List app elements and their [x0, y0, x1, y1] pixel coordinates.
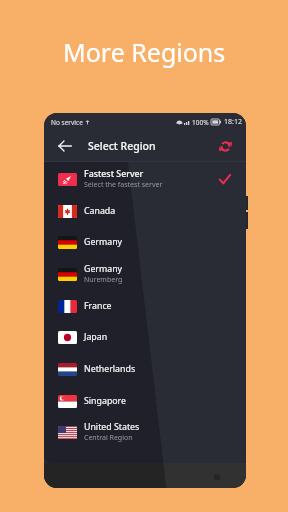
staticText: Central Region — [84, 433, 133, 443]
staticText: No service — [51, 118, 83, 127]
button[interactable]: Netherlands — [44, 353, 246, 385]
button[interactable]: Fastest Server — [44, 163, 246, 195]
button[interactable]: Japan — [44, 321, 246, 353]
staticText: 100% — [192, 118, 209, 127]
staticText: Select Region — [88, 139, 156, 153]
button[interactable]: France — [44, 290, 246, 322]
staticText: Germany — [84, 263, 123, 275]
staticText: France — [84, 300, 112, 312]
button[interactable]: Germany — [44, 258, 246, 290]
staticText: Fastest Server — [84, 168, 144, 180]
staticText: Select the fastest server — [84, 180, 163, 190]
staticText: Canada — [84, 205, 116, 217]
button[interactable]: Singapore — [44, 385, 246, 417]
button[interactable]: Canada — [44, 195, 246, 227]
button[interactable]: Refresh — [213, 134, 237, 158]
staticText: Germany — [84, 236, 123, 248]
button[interactable]: Back — [53, 134, 77, 158]
staticText: Japan — [84, 331, 108, 343]
staticText: 18:12 — [224, 117, 242, 127]
staticText: United States — [84, 421, 140, 433]
staticText: Singapore — [84, 395, 127, 407]
staticText: Netherlands — [84, 363, 136, 375]
button[interactable]: United States — [44, 416, 246, 448]
staticText: More Regions — [63, 35, 226, 69]
staticText: Nuremberg — [84, 275, 123, 285]
button[interactable]: Germany — [44, 226, 246, 258]
